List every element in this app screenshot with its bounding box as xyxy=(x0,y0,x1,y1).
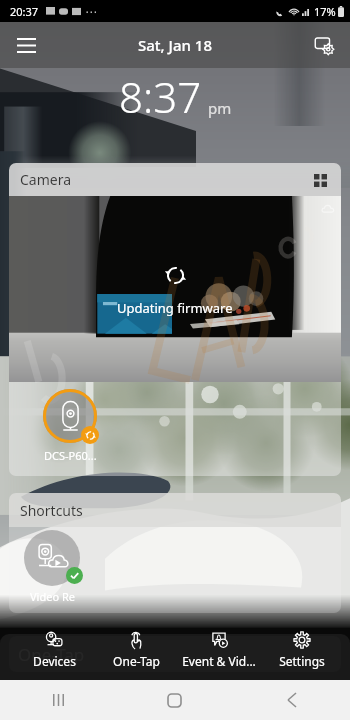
button[interactable]: Settings xyxy=(260,631,343,669)
staticText: Video Re xyxy=(30,589,75,604)
staticText: Event & Vid... xyxy=(182,653,256,669)
button[interactable]: Event & Vid... xyxy=(177,631,260,669)
button[interactable]: Back xyxy=(233,680,350,720)
staticText: Updating firmware xyxy=(117,299,233,317)
staticText: pm xyxy=(208,98,232,118)
staticText: 17% xyxy=(314,4,336,19)
button[interactable]: One-Tap xyxy=(95,631,177,669)
staticText: Devices xyxy=(33,653,76,669)
staticText: One-Tap xyxy=(18,643,85,666)
button[interactable]: DCS-P60 camera xyxy=(43,389,97,443)
staticText: Settings xyxy=(279,653,325,669)
button[interactable]: Menu xyxy=(5,24,47,66)
staticText: DCS-P60... xyxy=(44,448,97,463)
button[interactable]: Home xyxy=(116,680,233,720)
staticText: 8:37 xyxy=(119,68,202,125)
button[interactable]: Grid view xyxy=(307,167,333,193)
staticText: 20:37 xyxy=(10,4,39,19)
staticText: Shortcuts xyxy=(20,501,83,520)
button[interactable]: Video Recording xyxy=(24,530,80,586)
staticText: One-Tap xyxy=(113,653,160,669)
staticText: Camera xyxy=(20,170,72,189)
button[interactable]: Device settings xyxy=(303,24,345,66)
button[interactable]: Shortcuts xyxy=(9,493,341,613)
button[interactable]: Recents xyxy=(0,680,116,720)
button[interactable]: Devices xyxy=(13,631,95,669)
button[interactable]: One-Tap xyxy=(9,636,341,672)
staticText: Sat, Jan 18 xyxy=(138,35,212,55)
staticText: ⋯ xyxy=(85,5,97,19)
button[interactable]: Camera xyxy=(9,163,341,476)
